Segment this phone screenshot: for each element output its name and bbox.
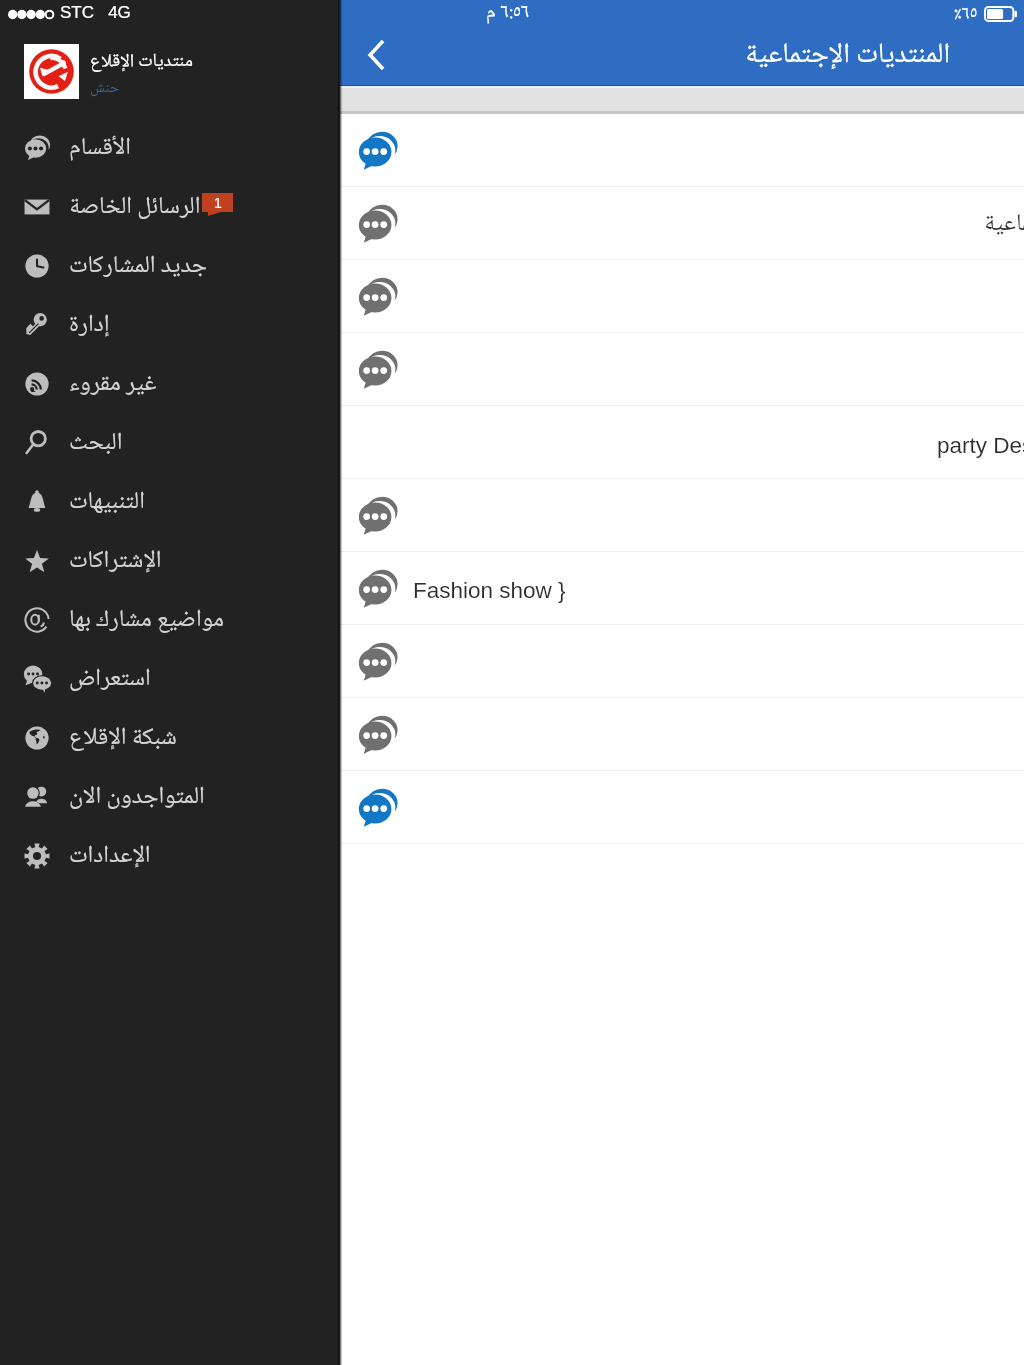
staticText: حنش (90, 78, 120, 98)
staticText: البحث (69, 426, 123, 459)
button[interactable]: Back (349, 27, 405, 82)
button[interactable]: Forum thread 4 (340, 333, 1024, 406)
staticText: المتواجدون الان (69, 780, 205, 813)
staticText: الرسائل الخاصة (69, 190, 201, 223)
button[interactable]: الإعدادات (0, 826, 338, 885)
staticText: المنتديات الإجتماعية (984, 207, 1024, 240)
button[interactable]: جديد المشاركات (0, 236, 338, 295)
button[interactable]: المنتديات الإجتماعية (340, 187, 1024, 260)
staticText: استعراض (69, 662, 151, 695)
button[interactable]: Fashion show } (340, 552, 1024, 625)
button[interactable]: مواضيع مشارك بها (0, 590, 338, 649)
staticText: منتديات الإقلاع (90, 49, 193, 74)
button[interactable]: Forum thread 10 (340, 771, 1024, 844)
button[interactable]: البحث (0, 413, 338, 472)
button[interactable]: غير مقروء (0, 354, 338, 413)
staticText: STC 4G (60, 3, 131, 22)
staticText: الإشتراكات (69, 544, 162, 577)
staticText: party Design ideas (937, 433, 1024, 458)
button[interactable]: استعراض (0, 649, 338, 708)
staticText: جديد المشاركات (69, 249, 208, 282)
staticText: 1 (214, 195, 222, 211)
button[interactable]: الرسائل الخاصة (0, 177, 338, 236)
staticText: شبكة الإقلاع (69, 721, 177, 754)
button[interactable]: الأقسام (0, 118, 338, 177)
staticText: إدارة (69, 308, 110, 341)
button[interactable]: Account: منتديات الإقلاع (0, 33, 338, 110)
button[interactable]: Forum thread 3 (340, 260, 1024, 333)
button[interactable]: المتواجدون الان (0, 767, 338, 826)
staticText: المنتديات الإجتماعية (745, 36, 951, 74)
button[interactable]: party Design ideas (340, 406, 1024, 479)
button[interactable]: Forum thread 8 (340, 625, 1024, 698)
button[interactable]: الإشتراكات (0, 531, 338, 590)
staticText: الأقسام (69, 131, 131, 164)
button[interactable]: Forum thread 1 (340, 114, 1024, 187)
staticText: غير مقروء (69, 367, 157, 400)
staticText: التنبيهات (69, 485, 145, 518)
staticText: ٪٦٥ (954, 1, 978, 27)
button[interactable]: Forum thread 6 (340, 479, 1024, 552)
staticText: مواضيع مشارك بها (69, 603, 224, 636)
staticText: الإعدادات (69, 839, 151, 872)
staticText: Fashion show } (413, 578, 566, 603)
staticText: ٦:٥٦ م (486, 0, 530, 26)
button[interactable]: شبكة الإقلاع (0, 708, 338, 767)
button[interactable]: Forum thread 9 (340, 698, 1024, 771)
button[interactable]: التنبيهات (0, 472, 338, 531)
button[interactable]: إدارة (0, 295, 338, 354)
